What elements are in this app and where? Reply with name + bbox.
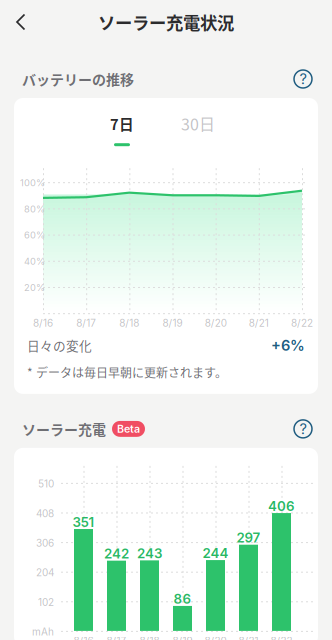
- staticText: 8/18: [119, 317, 139, 329]
- staticText: 30日: [181, 112, 215, 135]
- staticText: 8/17: [106, 635, 126, 640]
- staticText: 306: [36, 537, 54, 549]
- staticText: 8/16: [33, 317, 53, 329]
- staticText: ソーラー充電状況: [98, 9, 234, 35]
- staticText: バッテリーの推移: [22, 69, 134, 89]
- staticText: 40%: [24, 256, 45, 267]
- staticText: ?: [299, 70, 306, 88]
- staticText: 8/19: [162, 317, 182, 329]
- staticText: 8/16: [73, 635, 93, 640]
- button[interactable]: 戻る: [0, 1, 42, 43]
- staticText: 80%: [24, 203, 45, 215]
- staticText: 8/21: [249, 317, 269, 329]
- staticText: 8/19: [172, 635, 192, 640]
- staticText: 86: [173, 591, 191, 607]
- button[interactable]: ヘルプ: [288, 64, 318, 94]
- staticText: 8/22: [291, 317, 313, 329]
- staticText: 8/20: [204, 635, 226, 640]
- staticText: ?: [299, 420, 306, 438]
- button[interactable]: 7日: [103, 113, 141, 146]
- staticText: +6%: [271, 336, 305, 354]
- staticText: 204: [36, 567, 54, 579]
- staticText: 242: [104, 546, 129, 562]
- staticText: 243: [137, 545, 162, 561]
- staticText: 100%: [20, 177, 45, 188]
- staticText: mAh: [32, 626, 54, 638]
- staticText: 102: [38, 596, 54, 608]
- button[interactable]: 30日: [179, 112, 217, 147]
- staticText: 7日: [110, 113, 134, 134]
- staticText: 510: [38, 478, 54, 490]
- staticText: 244: [202, 545, 228, 561]
- button[interactable]: ヘルプ: [288, 414, 318, 444]
- staticText: 408: [36, 507, 54, 520]
- staticText: 297: [236, 530, 260, 546]
- staticText: 406: [268, 498, 295, 514]
- staticText: 8/20: [205, 317, 227, 329]
- staticText: 20%: [24, 282, 45, 293]
- staticText: 351: [72, 514, 94, 530]
- staticText: 8/18: [139, 635, 159, 640]
- staticText: 日々の変化: [27, 336, 92, 354]
- staticText: Beta: [117, 422, 140, 435]
- staticText: * データは毎日早朝に更新されます。: [27, 363, 227, 381]
- staticText: 8/22: [270, 635, 292, 640]
- staticText: ソーラー充電: [22, 419, 106, 439]
- staticText: 60%: [24, 230, 45, 241]
- staticText: 8/17: [76, 317, 96, 329]
- staticText: 8/21: [238, 635, 258, 640]
